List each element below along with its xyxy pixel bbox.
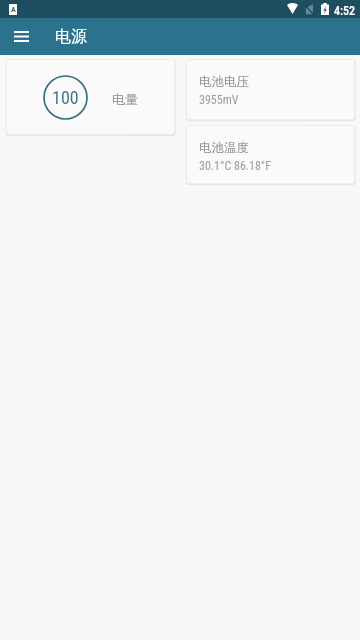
button[interactable]: Open navigation menu <box>7 22 36 51</box>
staticText: 电池温度 <box>199 140 249 156</box>
button[interactable]: 100 <box>6 59 175 135</box>
staticText: 100 <box>52 87 79 108</box>
button[interactable]: 电池温度 <box>186 125 355 184</box>
staticText: 4:52 <box>334 4 356 18</box>
button[interactable]: 电池电压 <box>186 59 355 120</box>
staticText: 3955mV <box>199 93 239 107</box>
staticText: A <box>11 5 16 14</box>
staticText: 电量 <box>112 91 138 107</box>
staticText: 电池电压 <box>199 74 249 90</box>
staticText: 30.1°C 86.18°F <box>199 159 272 173</box>
staticText: 电源 <box>55 27 87 47</box>
